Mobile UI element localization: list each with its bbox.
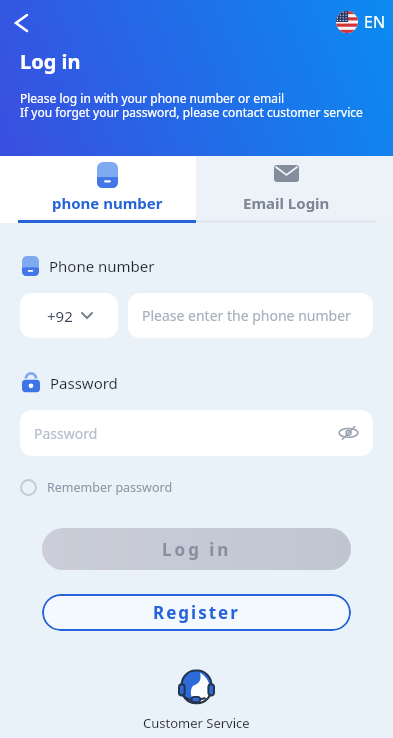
button[interactable]: EN — [336, 11, 386, 33]
button[interactable]: +92 — [20, 293, 118, 338]
staticText: Register — [153, 601, 240, 624]
button[interactable]: Email Login — [197, 156, 376, 220]
button[interactable]: Log in — [42, 528, 351, 570]
staticText: Log in — [20, 48, 81, 75]
button[interactable]: Remember password — [20, 479, 173, 496]
staticText: Email Login — [243, 193, 330, 213]
staticText: phone number — [52, 193, 163, 213]
staticText: EN — [364, 11, 386, 33]
button[interactable]: phone number — [18, 156, 197, 220]
button[interactable]: Password — [20, 410, 373, 456]
staticText: Log in — [162, 538, 232, 561]
staticText: Password — [50, 373, 118, 393]
staticText: Remember password — [47, 479, 173, 496]
button[interactable]: Please enter the phone number — [128, 293, 373, 338]
button[interactable]: Customer Service — [20, 669, 373, 732]
button[interactable]: Register — [42, 594, 351, 631]
staticText: Phone number — [49, 256, 155, 276]
staticText: Password — [34, 424, 98, 443]
staticText: Please log in with your phone number or … — [20, 90, 363, 120]
button[interactable] — [6, 8, 36, 38]
staticText: Please enter the phone number — [142, 306, 351, 325]
staticText: +92 — [47, 306, 73, 326]
staticText: Customer Service — [143, 714, 250, 732]
